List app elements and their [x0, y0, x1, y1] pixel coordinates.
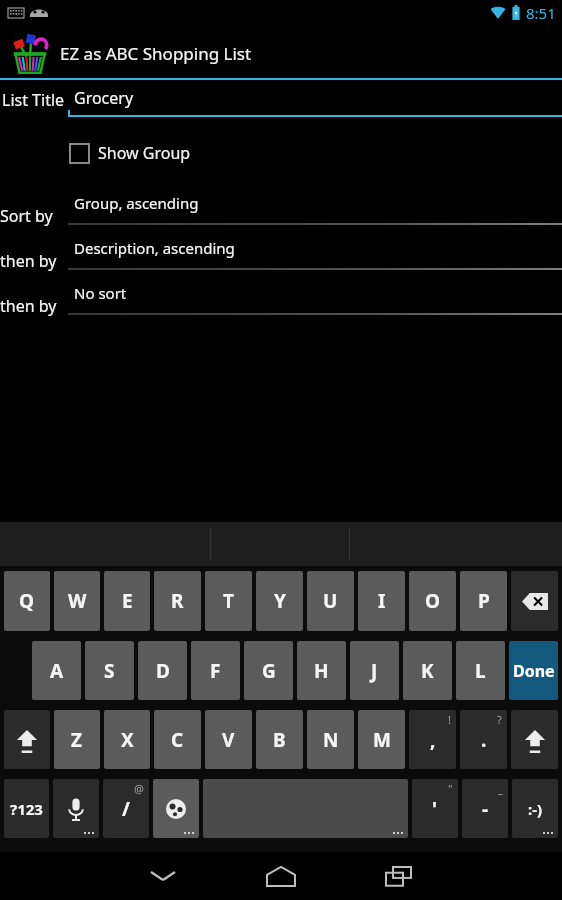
button[interactable]: S	[85, 641, 134, 700]
staticText: then by	[0, 250, 57, 272]
button[interactable]: No sort	[68, 276, 562, 321]
button[interactable]: Recent apps	[375, 852, 423, 900]
staticText: /	[122, 796, 130, 822]
staticText: :-)	[528, 799, 543, 819]
button[interactable]: Group, ascending	[68, 186, 562, 231]
button[interactable]: Shift	[4, 710, 50, 769]
button[interactable]: D	[138, 641, 187, 700]
button[interactable]: K	[403, 641, 452, 700]
staticText: N	[323, 727, 339, 753]
button[interactable]: B	[256, 710, 303, 769]
staticText: ?	[497, 712, 502, 727]
button[interactable]: N	[307, 710, 354, 769]
button[interactable]: Change language	[153, 779, 199, 838]
button[interactable]: '	[412, 779, 458, 838]
staticText: P	[478, 588, 490, 614]
button[interactable]: ?123	[4, 779, 49, 838]
button[interactable]: /	[103, 779, 149, 838]
staticText: _	[498, 781, 503, 796]
staticText: O	[425, 588, 441, 614]
staticText: Grocery	[74, 87, 134, 109]
button[interactable]: .	[460, 710, 507, 769]
staticText: Sort by	[0, 205, 53, 227]
staticText: S	[104, 658, 115, 684]
button[interactable]: C	[154, 710, 201, 769]
button[interactable]: I	[358, 571, 405, 631]
staticText: EZ as ABC Shopping List	[60, 42, 252, 65]
staticText: Y	[274, 588, 286, 614]
staticText: Description, ascending	[74, 238, 235, 258]
staticText: Done	[513, 660, 555, 682]
button[interactable]: Hide keyboard	[139, 852, 187, 900]
button[interactable]: T	[205, 571, 252, 631]
button[interactable]: Backspace	[511, 571, 558, 631]
button[interactable]: Home	[257, 852, 305, 900]
button[interactable]: :-)	[512, 779, 558, 838]
staticText: T	[223, 588, 234, 614]
button[interactable]: R	[154, 571, 201, 631]
staticText: then by	[0, 295, 57, 317]
staticText: @	[134, 781, 144, 796]
staticText: A	[50, 658, 64, 684]
staticText: L	[475, 658, 486, 684]
button[interactable]: P	[460, 571, 507, 631]
staticText: -	[482, 796, 489, 822]
button[interactable]: Z	[54, 710, 100, 769]
button[interactable]: Y	[256, 571, 303, 631]
staticText: ?123	[10, 799, 43, 819]
staticText: "	[448, 781, 453, 796]
button[interactable]: F	[191, 641, 240, 700]
button[interactable]: G	[244, 641, 293, 700]
staticText: M	[373, 727, 391, 753]
staticText: Show Group	[98, 142, 191, 164]
staticText: W	[68, 588, 87, 614]
button[interactable]: X	[104, 710, 150, 769]
button[interactable]: J	[350, 641, 399, 700]
button[interactable]: Description, ascending	[68, 231, 562, 276]
button[interactable]: V	[205, 710, 252, 769]
staticText: '	[432, 796, 438, 822]
staticText: E	[122, 588, 133, 614]
button[interactable]: W	[54, 571, 100, 631]
button[interactable]: U	[307, 571, 354, 631]
staticText: B	[273, 727, 286, 753]
button[interactable]: E	[104, 571, 150, 631]
button[interactable]: -	[462, 779, 508, 838]
button[interactable]: Grocery	[68, 82, 562, 122]
staticText: Group, ascending	[74, 193, 199, 213]
staticText: K	[421, 658, 434, 684]
staticText: 8:51	[526, 3, 556, 23]
staticText: G	[262, 658, 276, 684]
staticText: D	[156, 658, 170, 684]
staticText: !	[448, 712, 451, 727]
button[interactable]: Show Group	[70, 138, 191, 168]
staticText: F	[210, 658, 221, 684]
staticText: Z	[71, 727, 83, 753]
button[interactable]: Voice input	[53, 779, 99, 838]
staticText: List Title	[2, 89, 65, 111]
button[interactable]: ,	[409, 710, 456, 769]
staticText: C	[171, 727, 184, 753]
staticText: .	[481, 727, 487, 753]
staticText: H	[314, 658, 329, 684]
staticText: V	[222, 727, 235, 753]
button[interactable]: O	[409, 571, 456, 631]
staticText: No sort	[74, 283, 127, 303]
staticText: I	[378, 588, 386, 614]
button[interactable]: M	[358, 710, 405, 769]
button[interactable]: H	[297, 641, 346, 700]
staticText: Q	[19, 588, 35, 614]
staticText: J	[371, 658, 378, 684]
staticText: U	[323, 588, 338, 614]
staticText: R	[171, 588, 184, 614]
staticText: ,	[430, 727, 436, 753]
button[interactable]: Shift	[511, 710, 558, 769]
button[interactable]: Done	[509, 641, 558, 700]
button[interactable]: Q	[4, 571, 50, 631]
staticText: X	[121, 727, 134, 753]
button[interactable]: A	[32, 641, 81, 700]
button[interactable]: L	[456, 641, 505, 700]
button[interactable]	[203, 779, 408, 838]
